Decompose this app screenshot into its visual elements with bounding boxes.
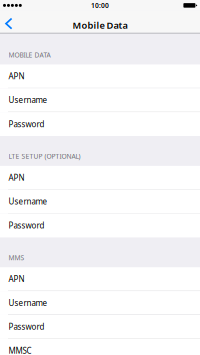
staticText: 10:00 (91, 1, 109, 10)
button[interactable]: Password (0, 214, 200, 237)
button[interactable]: APN (0, 166, 200, 190)
button[interactable]: Back (0, 17, 22, 33)
staticText: Mobile Data (72, 19, 127, 31)
staticText: APN (9, 172, 25, 183)
button[interactable]: APN (0, 64, 200, 88)
button[interactable]: MMSC (0, 339, 200, 355)
button[interactable]: Password (0, 315, 200, 339)
staticText: LTE SETUP (OPTIONAL) (9, 152, 81, 161)
staticText: Username (9, 95, 48, 105)
button[interactable]: Password (0, 112, 200, 136)
staticText: Password (9, 220, 45, 231)
staticText: Password (9, 119, 45, 129)
staticText: Username (9, 196, 48, 207)
staticText: APN (9, 71, 25, 81)
staticText: Username (9, 297, 48, 308)
button[interactable]: APN (0, 267, 200, 291)
staticText: Password (9, 321, 45, 332)
staticText: APN (9, 274, 25, 284)
staticText: MMSC (9, 345, 32, 355)
staticText: MMS (9, 253, 25, 262)
button[interactable]: Username (0, 291, 200, 315)
button[interactable]: Username (0, 190, 200, 214)
staticText: MOBILE DATA (9, 50, 51, 59)
button[interactable]: Username (0, 88, 200, 112)
